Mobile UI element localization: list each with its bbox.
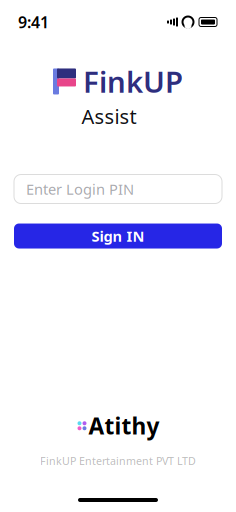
- staticText: Assist: [81, 103, 136, 130]
- staticText: Enter Login PIN: [26, 179, 134, 199]
- staticText: FinkUP Entertainment PVT LTD: [40, 454, 196, 468]
- staticText: 9:41: [18, 11, 49, 33]
- staticText: Sign IN: [91, 226, 144, 246]
- staticText: Atithy: [88, 411, 159, 441]
- button[interactable]: Sign IN: [0, 223, 236, 248]
- staticText: FinkUP: [83, 62, 183, 101]
